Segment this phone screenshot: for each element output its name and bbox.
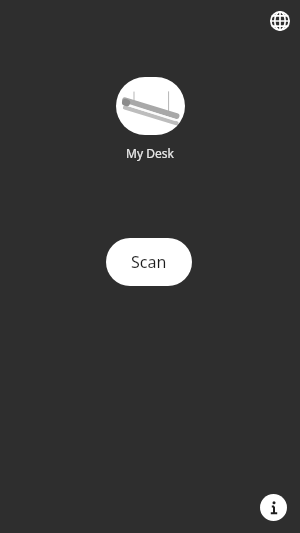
staticText: Scan — [131, 251, 167, 273]
staticText: My Desk — [126, 145, 174, 161]
button[interactable]: Info — [260, 494, 287, 521]
button[interactable]: Language — [264, 5, 295, 36]
button[interactable] — [116, 77, 185, 135]
button[interactable]: Scan — [106, 238, 192, 286]
